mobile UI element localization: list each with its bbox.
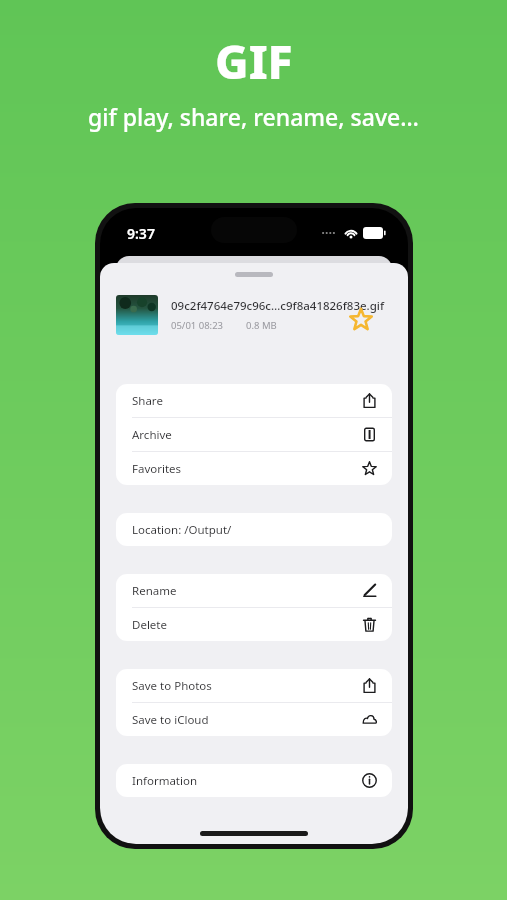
staticText: Share [132,393,163,409]
staticText: Favorites [132,461,182,477]
staticText: 0.8 MB [246,319,277,332]
button[interactable]: Archive [116,418,392,451]
button[interactable]: Favorites [116,452,392,485]
button[interactable]: Share [116,384,392,417]
staticText: 05/01 08:23 [171,319,224,332]
button[interactable]: Information [116,764,392,797]
staticText: 9:37 [127,224,155,243]
staticText: Archive [132,427,172,443]
staticText: Information [132,773,198,789]
staticText: Location: /Output/ [132,522,232,538]
staticText: 09c2f4764e79c96c…c9f8a41826f83e.gif [171,298,385,314]
button[interactable]: Save to iCloud [116,703,392,736]
staticText: Rename [132,583,177,599]
button[interactable]: Save to Photos [116,669,392,702]
staticText: gif play, share, rename, save… [88,101,419,132]
staticText: Save to iCloud [132,712,209,728]
staticText: Save to Photos [132,678,212,694]
staticText: GIF [215,30,293,93]
button[interactable]: Location: /Output/ [116,513,392,546]
button[interactable]: Delete [116,608,392,641]
staticText: Delete [132,617,167,633]
button[interactable]: Rename [116,574,392,607]
